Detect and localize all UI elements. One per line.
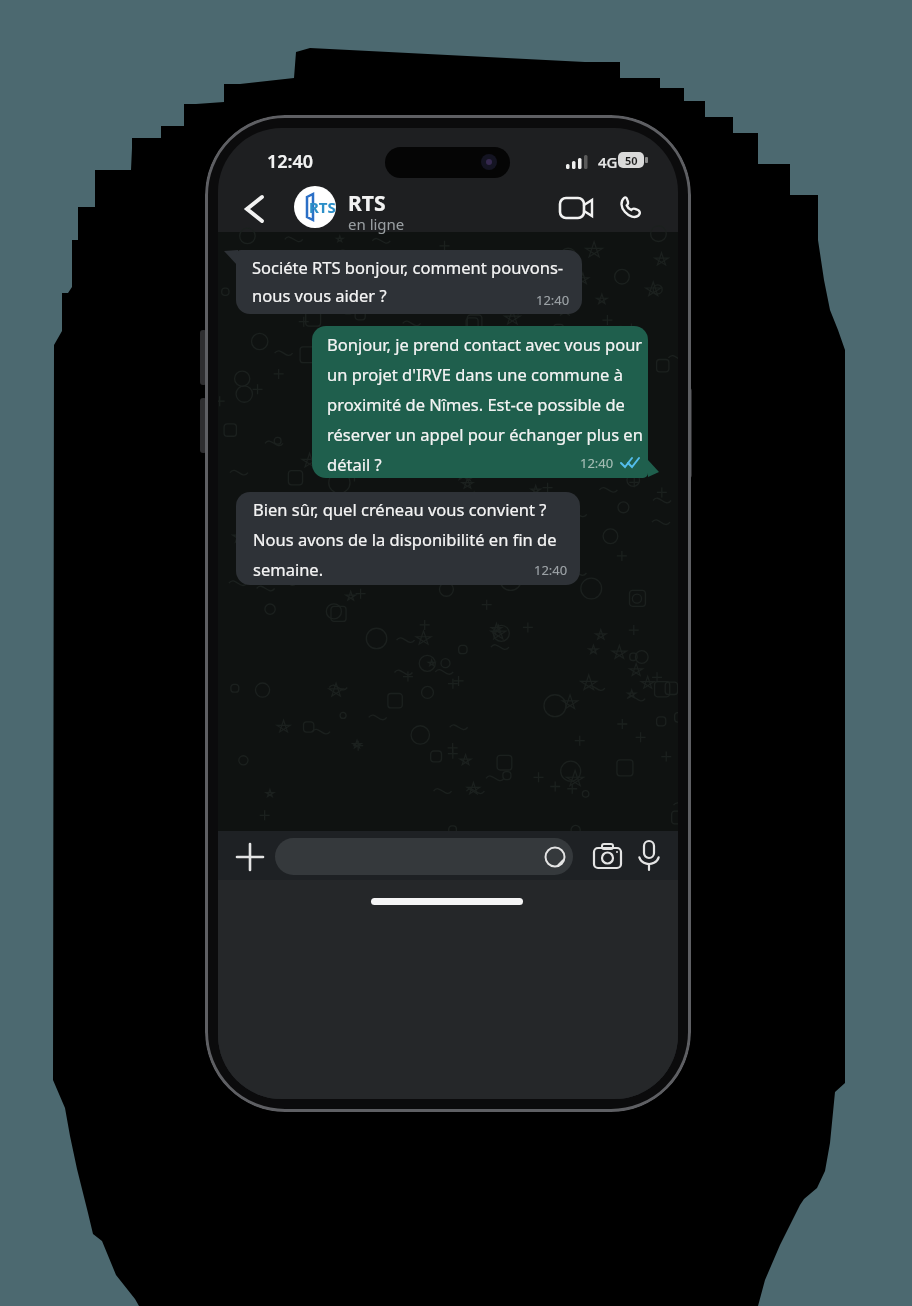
staticText: Bien sûr, quel créneau vous convient ? N…	[253, 498, 557, 580]
button[interactable]	[275, 838, 573, 875]
staticText: 50	[625, 153, 638, 168]
staticText: 12:40	[267, 149, 314, 174]
button[interactable]	[634, 838, 664, 874]
staticText: 12:40	[534, 561, 568, 579]
staticText: 12:40	[536, 291, 570, 309]
staticText: 12:40	[580, 454, 614, 472]
staticText: RTS	[309, 197, 336, 217]
staticText: 4G	[598, 152, 618, 172]
button[interactable]	[234, 841, 266, 873]
staticText: en ligne	[348, 214, 405, 234]
staticText: Bonjour, je prend contact avec vous pour…	[327, 333, 643, 475]
staticText: RTS	[348, 189, 386, 218]
button[interactable]	[616, 192, 648, 224]
button[interactable]	[590, 840, 626, 872]
button[interactable]	[555, 192, 597, 224]
button[interactable]	[238, 190, 272, 228]
staticText: Sociéte RTS bonjour, comment pouvons- no…	[252, 256, 564, 307]
button[interactable]: RTS	[294, 186, 336, 228]
